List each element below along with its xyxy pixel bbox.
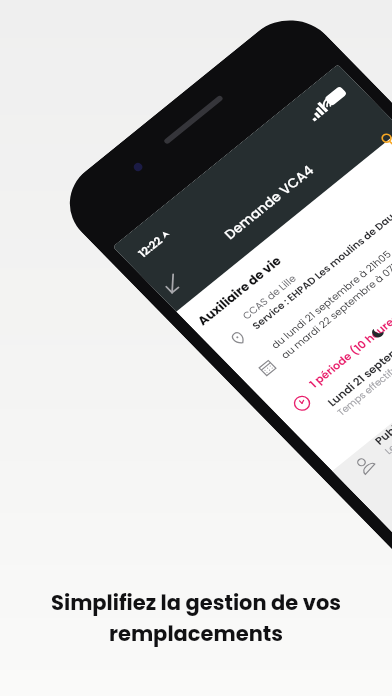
staticText: Temps effectif: 10 heures [334,331,392,423]
staticText: CCAS de Lille [239,268,300,325]
staticText: Lundi 21 septembre [323,326,392,414]
staticText: Simplifiez la gestion de vos remplacemen… [51,588,341,648]
staticText: Service : EHPAD Les moulins de Daudet [248,191,392,340]
staticText: 12:22 [134,232,166,261]
staticText: Le mardi 15 septembre [381,375,392,462]
staticText: Auxiliaire de vie [193,248,285,333]
staticText: 1 période (10 heures) [305,302,392,396]
staticText: Publiée par Claire [371,370,392,452]
staticText: du lundi 21 septembre à 21h05 [267,240,392,358]
staticText: au mardi 22 septembre à 07h05 [277,243,392,368]
staticText: Demande VCA4 [219,157,319,248]
